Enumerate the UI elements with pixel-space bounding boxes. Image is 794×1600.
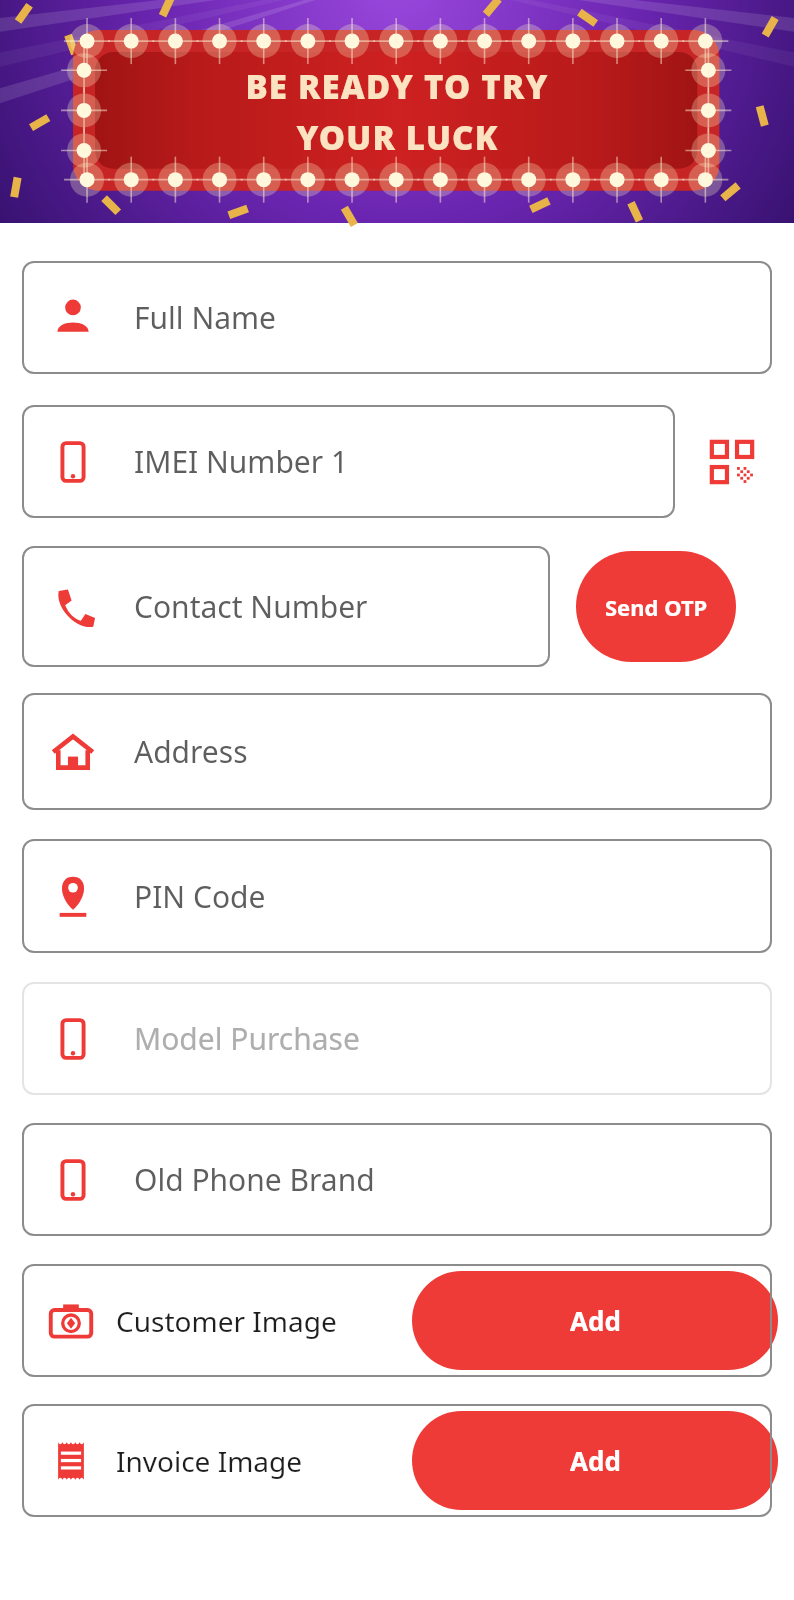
- staticText: PIN Code: [134, 876, 266, 917]
- staticText: Old Phone Brand: [134, 1159, 375, 1200]
- staticText: Address: [134, 731, 248, 772]
- staticText: Customer Image: [116, 1302, 337, 1340]
- button[interactable]: Contact Number: [22, 546, 550, 667]
- staticText: Model Purchase: [134, 1018, 360, 1059]
- button[interactable]: Add: [412, 1271, 778, 1370]
- staticText: Full Name: [134, 297, 276, 338]
- button[interactable]: PIN Code: [22, 839, 772, 953]
- button[interactable]: Old Phone Brand: [22, 1123, 772, 1236]
- button[interactable]: Full Name: [22, 261, 772, 374]
- staticText: Add: [570, 1443, 621, 1478]
- staticText: BE READY TO TRY: [245, 64, 549, 109]
- staticText: Add: [570, 1303, 621, 1338]
- staticText: Invoice Image: [116, 1442, 303, 1480]
- button[interactable]: Add: [412, 1411, 778, 1510]
- button[interactable]: IMEI Number 1: [22, 405, 675, 518]
- button[interactable]: Send OTP: [576, 551, 736, 662]
- button[interactable]: Address: [22, 693, 772, 810]
- button[interactable]: Model Purchase: [22, 982, 772, 1095]
- staticText: Send OTP: [605, 592, 708, 622]
- button[interactable]: Scan QR code: [692, 413, 772, 510]
- staticText: YOUR LUCK: [296, 115, 499, 160]
- staticText: Contact Number: [134, 586, 368, 627]
- staticText: IMEI Number 1: [134, 441, 349, 482]
